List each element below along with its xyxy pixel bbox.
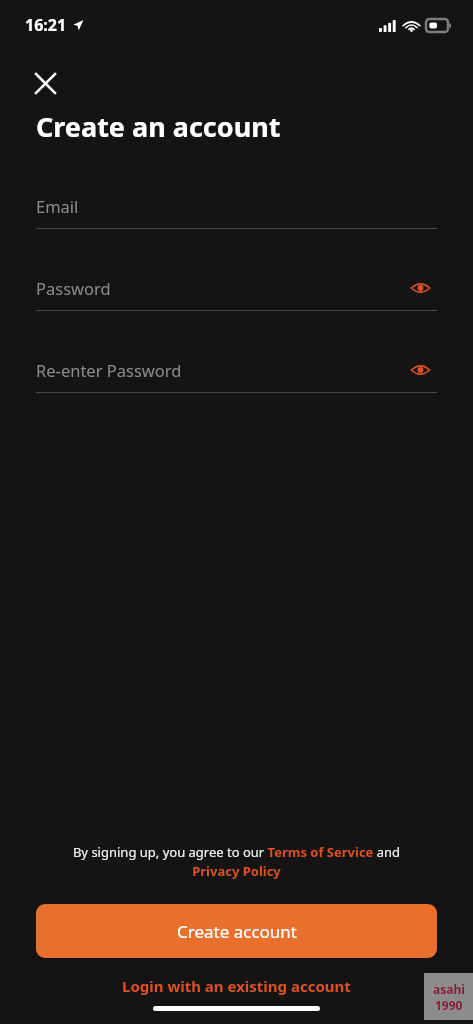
button[interactable]: Login with an existing account [0,966,473,1006]
staticText: Email [36,195,79,217]
staticText: Password [36,277,111,299]
button[interactable]: Show password [403,355,437,385]
button[interactable]: Close [22,60,68,106]
button[interactable]: Create account [36,904,437,958]
staticText: 1990 [435,997,463,1013]
staticText: Re-enter Password [36,359,182,381]
staticText: asahi [433,981,465,997]
staticText: Create an account [36,108,281,145]
staticText: By signing up, you agree to our Terms of… [52,843,421,880]
button[interactable]: Show password [403,273,437,303]
staticText: 16:21 [25,14,67,36]
staticText: Login with an existing account [122,976,351,996]
button[interactable]: By signing up, you agree to our Terms of… [52,843,421,880]
staticText: Create account [177,920,297,943]
